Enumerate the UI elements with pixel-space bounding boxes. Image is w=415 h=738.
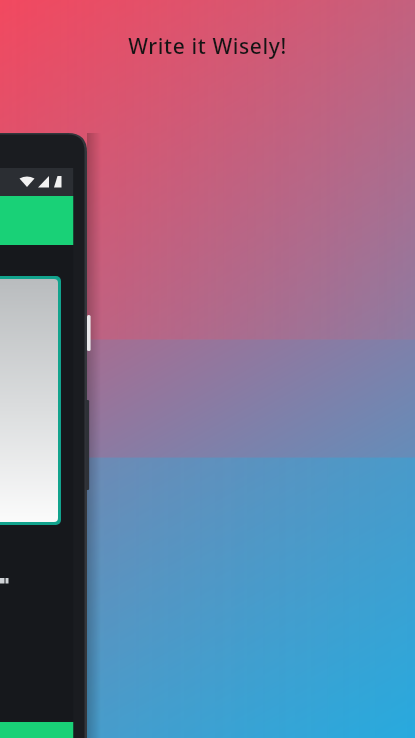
button[interactable]: Bottom action bar [0, 722, 74, 738]
button[interactable]: Write it Wisely! [0, 24, 415, 68]
button[interactable]: App bar [0, 196, 74, 246]
button[interactable]: Note card [0, 276, 61, 525]
staticText: Write it Wisely! [128, 32, 287, 61]
